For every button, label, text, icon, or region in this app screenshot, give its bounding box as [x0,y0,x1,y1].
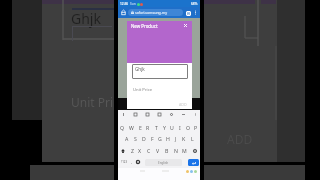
staticText: Z [131,147,134,154]
staticText: I [179,124,181,131]
button[interactable]: Backspace [189,146,200,155]
button[interactable]: safari.samsung.my [128,9,183,16]
staticText: P [194,124,198,131]
button[interactable]: Home [119,8,128,17]
button[interactable]: Close [183,23,188,28]
button[interactable]: English [145,159,182,166]
button[interactable]: T [152,123,160,132]
staticText: C [147,147,151,154]
button[interactable]: Q [118,123,127,132]
button[interactable]: I [176,123,184,132]
staticText: G [158,135,162,142]
staticText: E [139,124,142,131]
staticText: N [174,147,178,154]
staticText: K [182,135,186,142]
button[interactable]: More [192,111,198,117]
staticText: V [156,147,160,154]
button[interactable]: Keyboard settings [134,157,142,167]
button[interactable]: Y [160,123,168,132]
button[interactable]: B [162,146,171,155]
staticText: O [186,124,191,131]
staticText: J [175,135,177,142]
staticText: 02 [187,12,190,16]
staticText: 12:36 [120,2,129,6]
staticText: X [138,147,142,154]
staticText: Sun [130,2,136,6]
staticText: Unit Price [133,87,153,93]
button[interactable]: O [184,123,192,132]
staticText: H [166,135,170,142]
staticText: U [170,124,174,131]
staticText: B [165,147,169,154]
staticText: S [134,135,137,142]
staticText: D [142,135,146,142]
button[interactable]: R [144,123,152,132]
button[interactable]: U [168,123,176,132]
button[interactable]: K [180,134,188,143]
staticText: ?123 [121,160,128,164]
button[interactable]: L [188,134,196,143]
staticText: L [191,135,194,142]
button[interactable]: Enter [188,159,199,166]
staticText: Ghjk [71,9,101,28]
button[interactable]: Settings [168,111,174,117]
button[interactable]: Clipboard [132,111,138,117]
button[interactable]: Expand toolbar [120,111,126,117]
staticText: English [158,161,169,165]
button[interactable]: F [148,134,156,143]
button[interactable]: More options [192,9,199,16]
staticText: W [129,124,134,131]
button[interactable]: ADD [179,102,187,107]
button[interactable]: H [164,134,172,143]
button[interactable]: V [153,146,162,155]
staticText: A [125,135,129,142]
button[interactable]: J [172,134,180,143]
button[interactable]: G [156,134,164,143]
staticText: safari.samsung.my [135,10,167,15]
button[interactable]: Shift [118,146,128,155]
button[interactable]: A [122,134,131,143]
button[interactable]: Resize keyboard [180,111,186,117]
button[interactable]: Stickers [156,111,162,117]
button[interactable]: P [192,123,200,132]
button[interactable]: X [136,146,144,155]
staticText: 68% [191,2,198,6]
staticText: New Product [131,23,158,29]
staticText: Q [120,124,125,131]
staticText: F [151,135,154,142]
button[interactable]: Symbols [119,157,129,167]
button[interactable]: D [140,134,148,143]
staticText: R [146,124,150,131]
staticText: ADD [227,131,253,147]
staticText: Y [163,124,166,131]
staticText: T [155,124,158,131]
button[interactable]: W [127,123,136,132]
staticText: Ghjk [135,66,145,72]
button[interactable]: Tabs [184,9,192,17]
button[interactable]: E [136,123,144,132]
staticText: Unit Pri [71,94,114,110]
button[interactable]: C [144,146,153,155]
button[interactable]: Comma [129,157,134,167]
staticText: M [182,147,187,154]
button[interactable]: N [171,146,180,155]
staticText: , [131,159,133,165]
button[interactable]: GIF [144,111,150,117]
button[interactable]: S [131,134,140,143]
button[interactable]: Z [128,146,136,155]
button[interactable]: M [180,146,189,155]
